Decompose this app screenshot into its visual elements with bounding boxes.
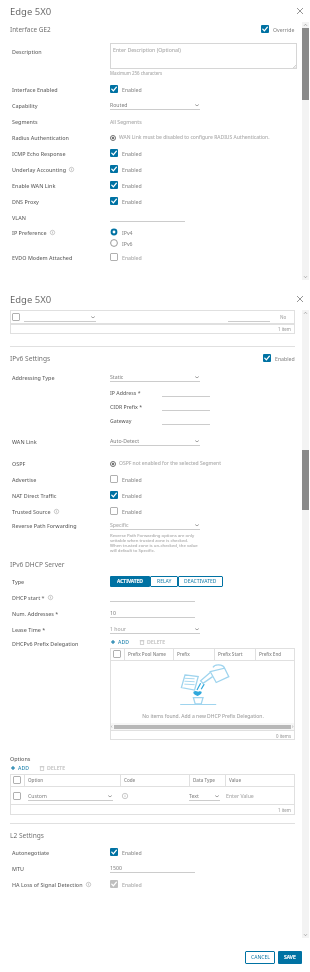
staticText: Enabled — [122, 86, 142, 93]
staticText: CANCEL — [251, 954, 270, 961]
button[interactable]: Text — [189, 791, 220, 801]
staticText: DHCPv6 Prefix Delegation — [12, 640, 79, 647]
staticText: Enabled — [122, 508, 142, 515]
button[interactable]: ADD — [110, 638, 129, 645]
staticText: EVDO Modem Attached — [12, 254, 73, 261]
button[interactable]: Close — [294, 5, 306, 17]
button[interactable]: Custom — [28, 791, 113, 801]
button[interactable]: Auto-Detect — [110, 436, 200, 446]
staticText: Reverse Path Forwarding — [12, 522, 77, 529]
button[interactable]: 1 hour — [110, 624, 200, 634]
staticText: Prefix End — [259, 651, 282, 657]
staticText: Enable WAN Link — [12, 182, 56, 189]
staticText: Enabled — [122, 166, 142, 173]
staticText: No items found. Add a new DHCP Prefix De… — [142, 713, 264, 720]
button[interactable] — [110, 507, 118, 515]
staticText: ACTIVATED — [117, 578, 143, 585]
button[interactable] — [110, 149, 118, 157]
staticText: Interface GE2 — [10, 25, 51, 34]
staticText: SAVE — [284, 954, 296, 961]
staticText: WAN Link must be disabled to configure R… — [119, 134, 270, 141]
button[interactable] — [162, 415, 210, 425]
button[interactable]: Enter Description (Optional) — [110, 43, 297, 69]
staticText: Enter Value — [226, 792, 254, 799]
staticText: Enabled — [122, 492, 142, 499]
staticText: L2 Settings — [10, 831, 45, 840]
button[interactable] — [24, 312, 96, 322]
staticText: Static — [110, 373, 194, 380]
staticText: Num. Addresses * — [12, 610, 59, 617]
staticText: 10 — [110, 609, 116, 616]
staticText: Radius Authentication — [12, 134, 69, 141]
staticText: Trusted Source — [12, 508, 51, 515]
staticText: DELETE — [147, 638, 166, 645]
button[interactable] — [110, 165, 118, 173]
staticText: Text — [189, 792, 214, 799]
button[interactable] — [110, 848, 118, 856]
button[interactable]: DEACTIVATED — [178, 576, 223, 587]
staticText: DELETE — [47, 764, 66, 771]
staticText: Override — [273, 26, 295, 33]
button[interactable] — [162, 387, 210, 397]
staticText: IP Preference — [12, 229, 47, 236]
staticText: WAN Link — [12, 438, 37, 445]
button[interactable] — [228, 312, 270, 322]
staticText: Value — [229, 777, 242, 783]
staticText: Specific — [110, 521, 194, 528]
button[interactable] — [110, 592, 195, 602]
staticText: Description — [12, 48, 42, 55]
staticText: Maximum 256 characters — [110, 70, 163, 76]
staticText: Code — [124, 777, 136, 783]
staticText: IP Address * — [110, 389, 162, 396]
staticText: Capability — [12, 102, 38, 109]
button[interactable]: Static — [110, 372, 200, 382]
button[interactable]: SAVE — [278, 951, 302, 964]
button[interactable] — [261, 25, 269, 33]
button[interactable] — [110, 181, 118, 189]
button[interactable]: Specific — [110, 520, 200, 530]
staticText: Prefix Start — [218, 651, 243, 657]
staticText: Options — [10, 755, 31, 762]
staticText: ‹ — [111, 723, 113, 730]
button[interactable]: IPv6 — [110, 239, 133, 247]
button[interactable]: IPv4 — [110, 228, 133, 236]
button[interactable]: ADD — [10, 764, 29, 771]
staticText: Lease Time * — [12, 626, 46, 633]
button[interactable]: RELAY — [150, 576, 178, 587]
button[interactable]: Close — [294, 293, 306, 305]
button[interactable] — [263, 354, 271, 362]
button[interactable] — [110, 85, 118, 93]
staticText: Segments — [12, 118, 38, 125]
staticText: Enabled — [122, 881, 142, 888]
staticText: Routed — [110, 101, 194, 108]
staticText: ICMP Echo Response — [12, 150, 66, 157]
staticText: MTU — [12, 865, 24, 872]
staticText: Gateway — [110, 417, 162, 424]
button[interactable] — [110, 253, 118, 261]
button[interactable] — [110, 880, 118, 888]
button[interactable]: DELETE — [39, 764, 66, 771]
staticText: 1500 — [110, 864, 122, 871]
staticText: All Segments — [110, 118, 142, 125]
button[interactable]: 10 — [110, 608, 195, 618]
button[interactable] — [110, 212, 185, 222]
button[interactable]: ACTIVATED — [110, 576, 150, 587]
staticText: Prefix — [177, 651, 190, 657]
staticText: Option — [28, 777, 44, 783]
button[interactable] — [110, 197, 118, 205]
button[interactable] — [110, 491, 118, 499]
staticText: Enabled — [122, 476, 142, 483]
button[interactable]: 1500 — [110, 863, 195, 873]
button[interactable] — [110, 475, 118, 483]
button[interactable]: DELETE — [139, 638, 166, 645]
staticText: Type — [12, 578, 25, 585]
button[interactable]: Routed — [110, 100, 200, 110]
button[interactable]: CANCEL — [245, 951, 275, 964]
staticText: VLAN — [12, 214, 26, 221]
staticText: Enabled — [122, 182, 142, 189]
staticText: Data Type — [193, 777, 215, 783]
staticText: Addressing Type — [12, 374, 55, 381]
staticText: Edge 5X0 — [10, 5, 52, 18]
staticText: 1 item — [278, 807, 291, 813]
button[interactable] — [162, 401, 210, 411]
